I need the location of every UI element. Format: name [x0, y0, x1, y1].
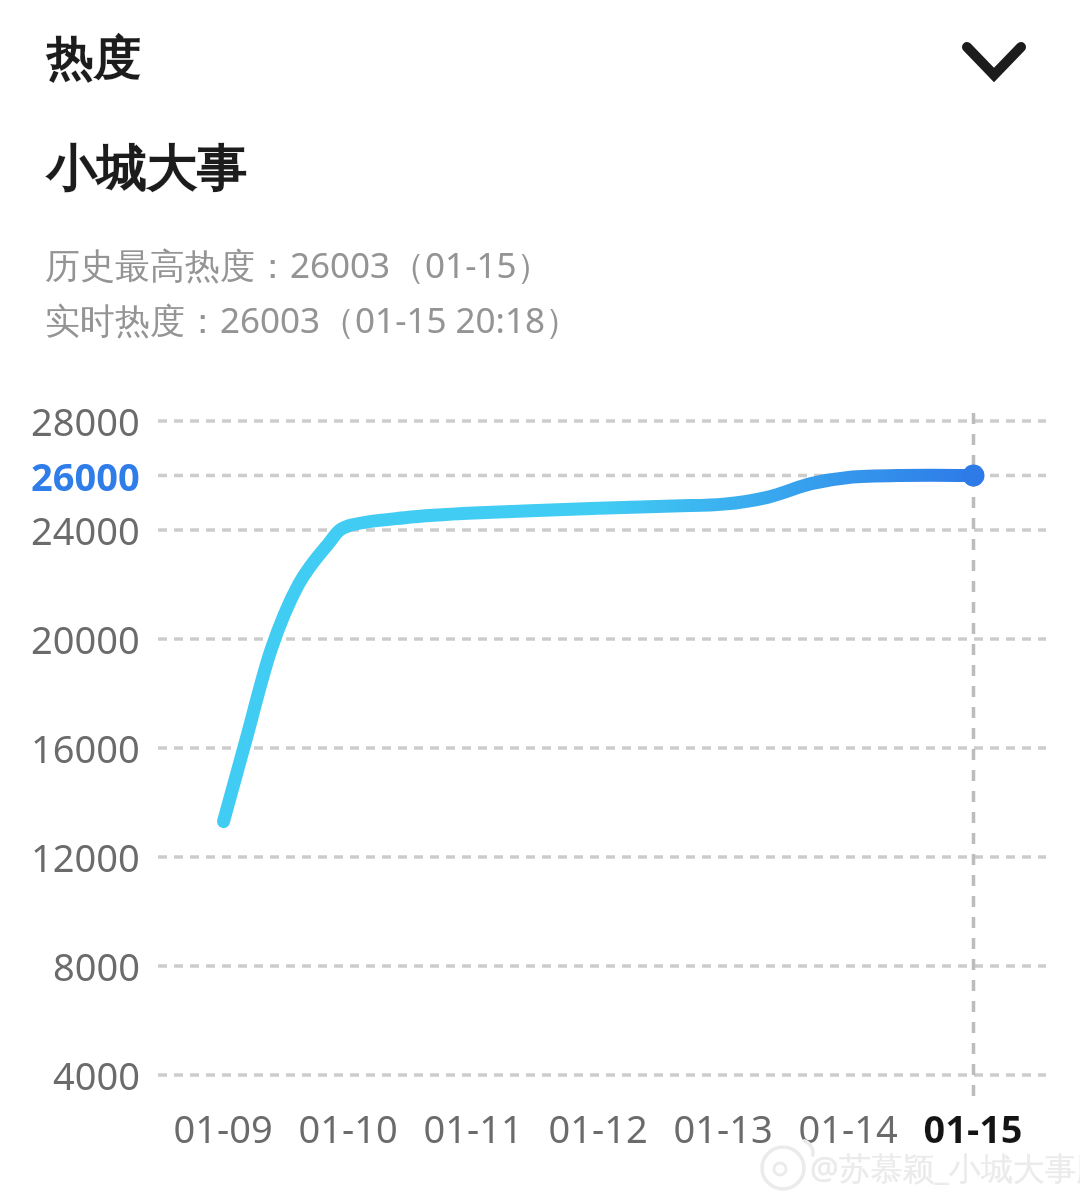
button[interactable] — [0, 4, 1080, 116]
button[interactable] — [30, 132, 650, 208]
button[interactable]: Heat trend chart — [140, 390, 1060, 1150]
button[interactable]: Collapse trend section — [936, 6, 1052, 114]
